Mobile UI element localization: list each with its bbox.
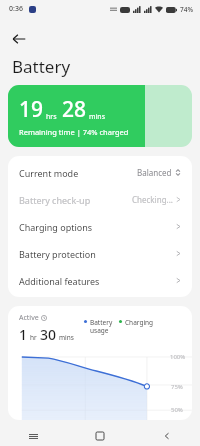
- staticText: 75%: [171, 383, 183, 391]
- staticText: Battery: [12, 55, 71, 78]
- staticText: Charging: [125, 318, 154, 327]
- staticText: mins: [59, 333, 74, 342]
- staticText: mins: [89, 112, 106, 122]
- staticText: Battery protection: [19, 248, 96, 260]
- button[interactable]: Current mode: [8, 159, 192, 186]
- staticText: 50%: [171, 406, 183, 414]
- staticText: Remaining time | 74% charged: [19, 127, 129, 137]
- staticText: Checking...: [132, 194, 173, 205]
- staticText: 100%: [170, 353, 186, 361]
- button[interactable]: Battery protection: [8, 240, 192, 267]
- button[interactable]: Charging options: [8, 213, 192, 240]
- button[interactable]: Battery check-up: [8, 186, 192, 213]
- staticText: 19: [19, 95, 44, 124]
- staticText: Charging options: [19, 221, 93, 233]
- button[interactable]: Home: [66, 426, 133, 446]
- staticText: Additional features: [19, 275, 100, 287]
- staticText: 30: [40, 325, 57, 344]
- button[interactable]: Active: [8, 306, 192, 420]
- staticText: Battery usage: [90, 318, 113, 335]
- staticText: Active: [19, 313, 39, 323]
- staticText: 74%: [180, 5, 193, 14]
- staticText: hrs: [46, 112, 57, 122]
- button[interactable]: Back: [6, 26, 32, 52]
- staticText: 1: [19, 325, 28, 344]
- staticText: hr: [30, 333, 37, 342]
- staticText: Balanced: [137, 167, 172, 178]
- staticText: Current mode: [19, 167, 79, 179]
- button[interactable]: Additional features: [8, 267, 192, 294]
- button[interactable]: 19: [8, 85, 192, 147]
- button[interactable]: Back: [133, 426, 200, 446]
- staticText: Battery check-up: [19, 194, 91, 206]
- staticText: 0:36: [9, 4, 23, 14]
- staticText: 28: [62, 95, 87, 124]
- button[interactable]: Recent apps: [0, 426, 66, 446]
